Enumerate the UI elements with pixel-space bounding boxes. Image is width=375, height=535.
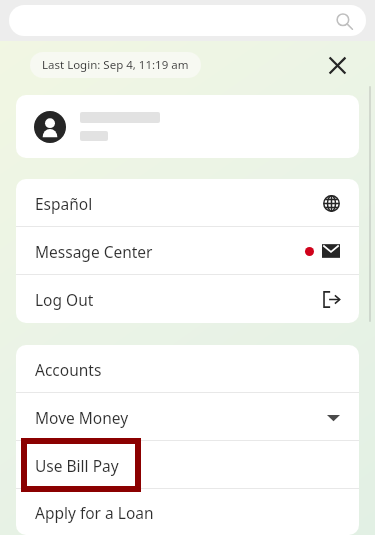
other: Language [323,195,340,212]
other: Search [335,12,353,30]
other: Expand [327,411,340,424]
button[interactable]: Apply for a Loan [16,489,359,535]
button[interactable]: Español [16,179,359,227]
staticText: Use Bill Pay [35,455,119,476]
button[interactable]: Log Out [16,275,359,323]
staticText: Apply for a Loan [35,502,154,523]
staticText: Accounts [35,359,102,380]
button[interactable]: Move Money [16,393,359,441]
button[interactable]: Accounts [16,345,359,393]
button[interactable]: Last Login: Sep 4, 11:19 am [30,52,201,78]
button[interactable]: Close [323,51,351,79]
button[interactable] [16,95,359,158]
other: Message Center [322,242,340,260]
staticText: Log Out [35,289,94,310]
staticText: Message Center [35,241,153,262]
other: Log Out [323,291,340,308]
staticText: Español [35,193,93,214]
staticText: Move Money [35,407,129,428]
button[interactable]: Use Bill Pay [16,441,359,489]
button[interactable]: Message Center [16,227,359,275]
staticText: Last Login: Sep 4, 11:19 am [42,57,189,73]
button[interactable]: Search [9,5,366,36]
